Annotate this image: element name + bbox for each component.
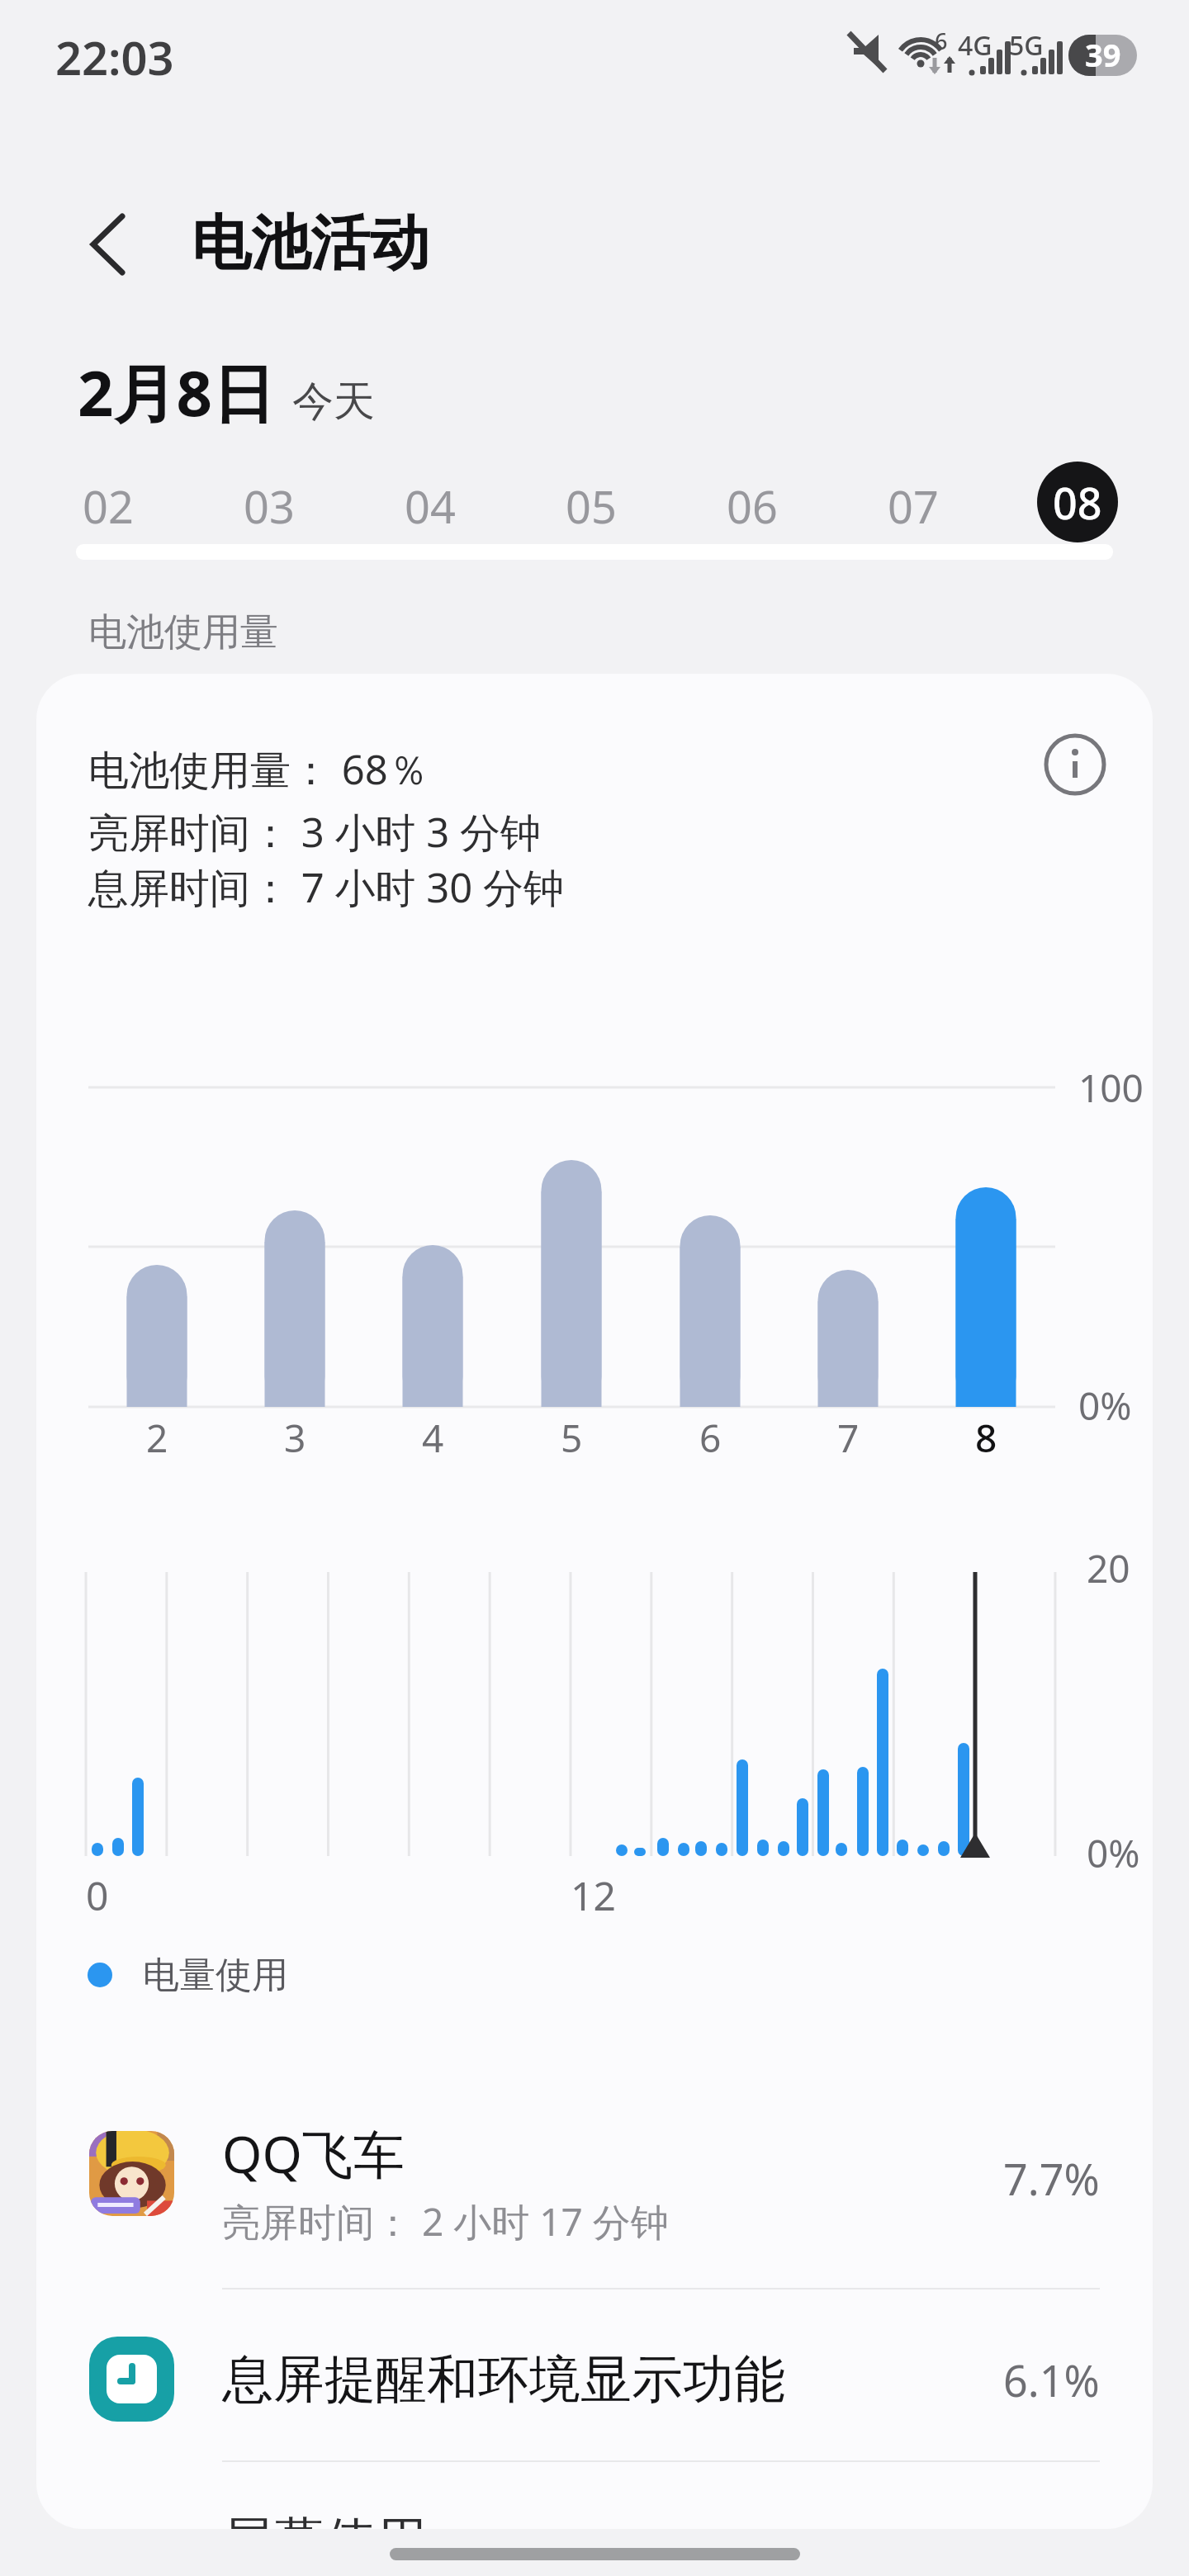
staticText: 5 xyxy=(561,1412,583,1464)
button[interactable] xyxy=(89,2337,174,2422)
staticText: 3 xyxy=(284,1412,306,1464)
button[interactable] xyxy=(390,2548,800,2560)
staticText: 电池使用量： 68％ xyxy=(88,741,429,797)
staticText: 4G xyxy=(958,27,992,64)
staticText: 0% xyxy=(1078,1380,1132,1432)
staticText: 39 xyxy=(1085,33,1121,76)
staticText: 7 xyxy=(837,1412,860,1464)
staticText: 亮屏时间： 3 小时 3 分钟 xyxy=(88,804,542,859)
button[interactable]: 03 xyxy=(203,444,335,568)
staticText: 12 xyxy=(571,1868,616,1922)
staticText: 电池活动 xyxy=(192,206,429,282)
staticText: 0 xyxy=(86,1868,109,1922)
staticText: 今天 xyxy=(292,376,375,428)
staticText: 6.1% xyxy=(1003,2351,1100,2409)
button[interactable] xyxy=(36,2289,1153,2461)
button[interactable] xyxy=(89,2131,174,2216)
staticText: 03 xyxy=(244,476,295,537)
button[interactable] xyxy=(79,207,139,282)
staticText: 04 xyxy=(405,476,456,537)
staticText: 02 xyxy=(83,476,134,537)
staticText: 6 xyxy=(935,26,948,56)
button[interactable] xyxy=(36,2088,1153,2289)
staticText: 屏幕使用 xyxy=(222,2509,427,2529)
staticText: 100 xyxy=(1078,1062,1144,1114)
staticText: QQ飞车 xyxy=(222,2119,405,2189)
staticText: 5G xyxy=(1009,27,1044,64)
button[interactable]: 06 xyxy=(686,444,818,568)
staticText: 7.7% xyxy=(1003,2149,1100,2208)
staticText: 亮屏时间： 2 小时 17 分钟 xyxy=(222,2195,669,2247)
staticText: 07 xyxy=(888,476,939,537)
staticText: 息屏时间： 7 小时 30 分钟 xyxy=(88,859,565,915)
button[interactable]: 02 xyxy=(42,444,174,568)
staticText: 息屏提醒和环境显示功能 xyxy=(222,2347,785,2412)
staticText: 0% xyxy=(1087,1827,1140,1879)
button[interactable] xyxy=(1045,735,1105,794)
staticText: 电池使用量 xyxy=(88,608,278,656)
staticText: 2 xyxy=(146,1412,168,1464)
staticText: 2月8日 xyxy=(78,349,275,435)
staticText: 20 xyxy=(1087,1542,1130,1594)
button[interactable]: 07 xyxy=(847,444,979,568)
staticText: 6 xyxy=(699,1412,722,1464)
staticText: 4 xyxy=(422,1412,444,1464)
staticText: 08 xyxy=(1053,473,1102,532)
button[interactable]: 08 xyxy=(1037,462,1118,542)
button[interactable]: 05 xyxy=(525,444,657,568)
staticText: 05 xyxy=(566,476,617,537)
staticText: 电量使用 xyxy=(143,1953,288,1998)
staticText: 22:03 xyxy=(55,26,174,88)
button[interactable]: 04 xyxy=(364,444,496,568)
staticText: 06 xyxy=(727,476,778,537)
staticText: 8 xyxy=(975,1412,997,1464)
